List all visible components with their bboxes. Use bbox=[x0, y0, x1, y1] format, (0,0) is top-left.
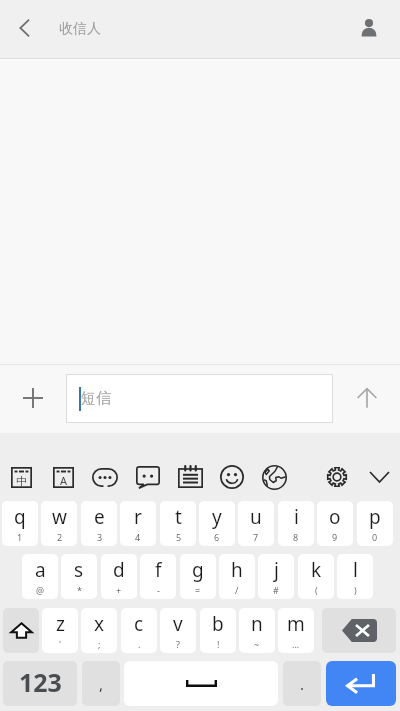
staticText: p bbox=[369, 504, 381, 530]
button[interactable]: r bbox=[120, 501, 156, 546]
button[interactable]: Translate bbox=[256, 459, 292, 495]
staticText: c bbox=[134, 611, 144, 637]
staticText: e bbox=[94, 504, 105, 530]
button[interactable]: Contacts bbox=[346, 6, 391, 51]
staticText: 1 bbox=[17, 531, 23, 543]
button[interactable]: . bbox=[283, 661, 321, 706]
button[interactable]: y bbox=[199, 501, 235, 546]
staticText: h bbox=[231, 557, 243, 583]
staticText: # bbox=[273, 584, 279, 596]
staticText: ( bbox=[315, 584, 318, 596]
staticText: k bbox=[311, 557, 322, 583]
button[interactable]: 短信 bbox=[66, 374, 333, 423]
button[interactable]: q bbox=[2, 501, 38, 546]
staticText: q bbox=[14, 504, 26, 530]
button[interactable]: Shift bbox=[3, 608, 39, 653]
staticText: 中 bbox=[16, 474, 27, 488]
button[interactable]: k bbox=[298, 554, 334, 599]
staticText: 8 bbox=[293, 531, 299, 543]
staticText: 短信 bbox=[81, 389, 111, 408]
button[interactable]: Emoji bbox=[214, 459, 250, 495]
button[interactable]: n bbox=[239, 608, 275, 653]
button[interactable]: w bbox=[41, 501, 77, 546]
staticText: ; bbox=[98, 638, 101, 650]
staticText: o bbox=[329, 504, 341, 530]
button[interactable]: a bbox=[22, 554, 58, 599]
button[interactable]: Backspace bbox=[322, 608, 396, 653]
staticText: x bbox=[94, 611, 105, 637]
button[interactable]: Back bbox=[2, 5, 47, 50]
button[interactable]: 123 bbox=[3, 661, 77, 706]
staticText: b bbox=[212, 611, 224, 637]
button[interactable]: Send bbox=[345, 376, 389, 420]
staticText: 7 bbox=[253, 531, 259, 543]
button[interactable]: b bbox=[200, 608, 236, 653]
button[interactable]: English input bbox=[45, 459, 81, 495]
button[interactable]: Add attachment bbox=[11, 376, 55, 420]
button[interactable]: t bbox=[160, 501, 196, 546]
staticText: a bbox=[35, 557, 46, 583]
button[interactable]: , bbox=[82, 661, 120, 706]
button[interactable]: Quick phrases bbox=[87, 459, 123, 495]
staticText: j bbox=[274, 557, 279, 583]
button[interactable]: Stickers bbox=[130, 459, 166, 495]
staticText: ' bbox=[59, 638, 62, 650]
staticText: s bbox=[74, 557, 84, 583]
staticText: , bbox=[99, 674, 104, 694]
button[interactable]: Space bbox=[124, 661, 278, 706]
button[interactable]: p bbox=[357, 501, 393, 546]
button[interactable]: s bbox=[61, 554, 97, 599]
staticText: 6 bbox=[214, 531, 220, 543]
button[interactable]: Settings bbox=[319, 459, 355, 495]
staticText: * bbox=[77, 584, 82, 596]
staticText: z bbox=[56, 611, 65, 637]
staticText: . bbox=[300, 674, 305, 694]
staticText: . bbox=[138, 638, 141, 650]
staticText: A bbox=[60, 473, 68, 488]
button[interactable]: d bbox=[101, 554, 137, 599]
button[interactable]: Enter bbox=[326, 661, 396, 706]
staticText: l bbox=[353, 557, 358, 583]
button[interactable]: e bbox=[81, 501, 117, 546]
button[interactable]: g bbox=[180, 554, 216, 599]
button[interactable]: c bbox=[121, 608, 157, 653]
button[interactable]: Clipboard bbox=[172, 459, 208, 495]
button[interactable]: f bbox=[140, 554, 176, 599]
button[interactable]: x bbox=[81, 608, 117, 653]
staticText: 0 bbox=[372, 531, 378, 543]
staticText: f bbox=[155, 557, 162, 583]
button[interactable]: l bbox=[337, 554, 373, 599]
staticText: ! bbox=[217, 638, 220, 650]
staticText: / bbox=[235, 584, 239, 596]
button[interactable]: m bbox=[278, 608, 314, 653]
staticText: m bbox=[287, 611, 305, 637]
button[interactable]: u bbox=[238, 501, 274, 546]
button[interactable]: z bbox=[42, 608, 78, 653]
staticText: v bbox=[173, 611, 183, 637]
staticText: i bbox=[294, 504, 299, 530]
staticText: 5 bbox=[176, 531, 182, 543]
staticText: y bbox=[212, 504, 222, 530]
staticText: ) bbox=[354, 584, 357, 596]
staticText: = bbox=[195, 584, 201, 596]
button[interactable]: v bbox=[160, 608, 196, 653]
staticText: 123 bbox=[19, 665, 62, 699]
staticText: t bbox=[175, 504, 182, 530]
staticText: 收信人 bbox=[59, 20, 101, 38]
staticText: w bbox=[52, 504, 67, 530]
button[interactable]: o bbox=[317, 501, 353, 546]
staticText: + bbox=[116, 584, 122, 596]
button[interactable]: j bbox=[258, 554, 294, 599]
staticText: ? bbox=[176, 638, 180, 650]
button[interactable]: Chinese input bbox=[3, 459, 39, 495]
staticText: r bbox=[134, 504, 142, 530]
button[interactable]: Hide keyboard bbox=[361, 459, 397, 495]
staticText: @ bbox=[36, 584, 45, 596]
staticText: u bbox=[250, 504, 262, 530]
staticText: 2 bbox=[57, 531, 63, 543]
button[interactable]: i bbox=[278, 501, 314, 546]
staticText: g bbox=[192, 557, 204, 583]
button[interactable]: h bbox=[219, 554, 255, 599]
staticText: n bbox=[251, 611, 263, 637]
staticText: - bbox=[157, 584, 160, 596]
